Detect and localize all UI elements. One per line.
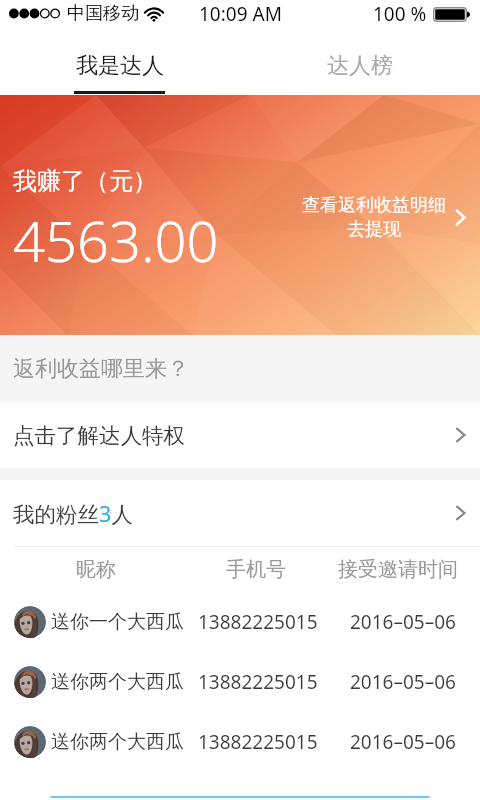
- staticText: 中国移动: [67, 2, 139, 25]
- button[interactable]: 送你两个大西瓜: [0, 652, 480, 712]
- button[interactable]: 送你两个大西瓜: [0, 712, 480, 772]
- staticText: 送你两个大西瓜: [51, 730, 184, 754]
- staticText: 2016–05–06: [350, 729, 456, 755]
- staticText: 13882225015: [198, 609, 318, 635]
- staticText: 返利收益哪里来？: [13, 355, 189, 383]
- staticText: 100 %: [373, 1, 427, 27]
- staticText: 13882225015: [198, 729, 318, 755]
- button[interactable]: 达人榜: [240, 37, 480, 95]
- staticText: 接受邀请时间: [338, 557, 458, 582]
- staticText: 点击了解达人特权: [13, 422, 185, 449]
- button[interactable]: 查看返利收益明细: [302, 194, 466, 241]
- staticText: 手机号: [226, 557, 286, 582]
- button[interactable]: 送你一个大西瓜: [0, 592, 480, 652]
- staticText: 昵称: [76, 557, 116, 582]
- staticText: 达人榜: [327, 52, 393, 80]
- button[interactable]: 点击了解达人特权: [0, 402, 480, 468]
- staticText: 我赚了（元）: [13, 166, 157, 196]
- staticText: 13882225015: [198, 669, 318, 695]
- button[interactable]: 我是达人: [0, 37, 240, 95]
- staticText: 4563.00: [13, 202, 219, 278]
- staticText: 送你一个大西瓜: [51, 610, 184, 634]
- staticText: 去提现: [347, 218, 401, 241]
- staticText: 2016–05–06: [350, 609, 456, 635]
- staticText: 送你两个大西瓜: [51, 670, 184, 694]
- button[interactable]: 我的粉丝3人: [0, 480, 480, 546]
- staticText: 我的粉丝3人: [13, 499, 133, 528]
- staticText: 2016–05–06: [350, 669, 456, 695]
- staticText: 查看返利收益明细: [302, 194, 446, 217]
- staticText: 我是达人: [76, 52, 164, 80]
- staticText: 10:09 AM: [199, 1, 282, 27]
